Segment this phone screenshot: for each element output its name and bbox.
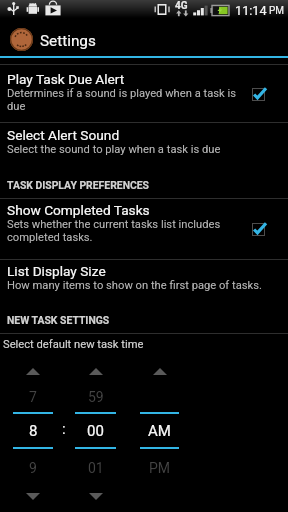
staticText: 01: [88, 460, 104, 476]
staticText: NEW TASK SETTINGS: [7, 314, 110, 326]
button[interactable]: Select Alert Sound: [0, 123, 288, 176]
staticText: Show Completed Tasks: [7, 202, 150, 218]
staticText: PM: [269, 5, 285, 17]
button[interactable]: Play Task Due Alert: [0, 65, 288, 122]
staticText: List Display Size: [7, 263, 106, 279]
staticText: Sets whether the current tasks list incl…: [7, 218, 242, 244]
button[interactable]: Increment: [140, 361, 179, 381]
staticText: 00: [87, 422, 104, 440]
staticText: Settings: [40, 32, 96, 50]
staticText: 59: [88, 389, 104, 405]
button[interactable]: Show Completed Tasks: [245, 216, 271, 242]
button[interactable]: Increment: [75, 361, 116, 381]
button[interactable]: Increment: [13, 361, 53, 381]
button[interactable]: Decrement: [13, 487, 53, 505]
staticText: Select default new task time: [3, 338, 144, 351]
staticText: 4G: [175, 0, 188, 12]
staticText: AM: [148, 422, 171, 440]
button[interactable]: 8: [13, 414, 53, 447]
staticText: 8: [29, 422, 38, 440]
staticText: PM: [149, 460, 171, 476]
button[interactable]: Decrement: [75, 487, 116, 505]
staticText: Select Alert Sound: [7, 127, 120, 143]
staticText: 9: [29, 460, 37, 476]
button[interactable]: List Display Size: [0, 260, 288, 313]
staticText: 7: [29, 389, 37, 405]
staticText: Play Task Due Alert: [7, 71, 125, 87]
staticText: TASK DISPLAY PREFERENCES: [7, 179, 150, 191]
button[interactable]: 00: [75, 414, 116, 447]
button[interactable]: AM: [140, 414, 179, 447]
button[interactable]: Show Completed Tasks: [0, 199, 288, 259]
staticText: Select the sound to play when a task is …: [7, 143, 221, 156]
staticText: :: [62, 420, 66, 438]
staticText: How many items to show on the first page…: [7, 279, 262, 292]
staticText: Determines if a sound is played when a t…: [7, 87, 242, 113]
button[interactable]: Play Task Due Alert: [245, 81, 271, 107]
staticText: 11:14: [235, 3, 267, 18]
